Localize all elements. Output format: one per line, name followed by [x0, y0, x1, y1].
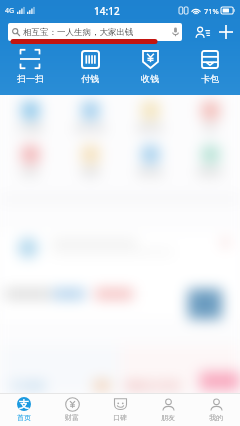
staticText: 扫一扫: [17, 73, 44, 84]
staticText: 天天抽奖: [10, 380, 46, 391]
button[interactable]: 收钱: [120, 43, 180, 95]
staticText: 4G: [5, 6, 15, 16]
button[interactable]: 财富: [48, 394, 96, 426]
staticText: 收钱: [141, 73, 159, 84]
button[interactable]: 支: [0, 394, 48, 426]
button[interactable]: 我的: [192, 394, 240, 426]
staticText: 财富: [65, 413, 79, 422]
staticText: 蚂蚁森林: [198, 168, 222, 176]
staticText: 余额宝: [21, 168, 39, 176]
staticText: 信用卡还款: [75, 124, 105, 132]
button[interactable]: Add: [214, 21, 238, 43]
button[interactable]: 卡包: [180, 43, 240, 95]
staticText: 花呗: [204, 124, 216, 132]
button[interactable]: 扫一扫: [0, 43, 60, 95]
button[interactable]: 口碑: [96, 394, 144, 426]
staticText: 生活缴费: [18, 124, 42, 132]
staticText: 淘票票: [81, 168, 99, 176]
button[interactable]: 付钱: [60, 43, 120, 95]
button[interactable]: 朋友: [144, 394, 192, 426]
staticText: 我的快递: [138, 168, 162, 176]
staticText: 口碑: [113, 413, 127, 422]
button[interactable]: 相互宝：一人生病，大家出钱: [8, 23, 182, 41]
staticText: 卡包: [201, 73, 219, 84]
staticText: 付钱: [81, 73, 99, 84]
staticText: 支: [19, 398, 29, 411]
staticText: 朋友: [161, 413, 175, 422]
staticText: 我的: [209, 413, 223, 422]
staticText: 14:12: [94, 4, 120, 18]
staticText: 相互宝：一人生病，大家出钱: [23, 27, 134, 38]
staticText: 首页: [17, 413, 31, 422]
staticText: 71%: [204, 6, 219, 16]
button[interactable]: Friends: [190, 21, 214, 43]
staticText: 蚂蚁庄园: [138, 124, 162, 132]
